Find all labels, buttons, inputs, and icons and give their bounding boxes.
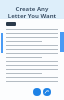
button[interactable]: Share (43, 88, 51, 96)
button[interactable]: Copy (33, 88, 41, 96)
staticText: Create Any Letter You Want (0, 5, 64, 19)
button[interactable] (6, 22, 16, 26)
